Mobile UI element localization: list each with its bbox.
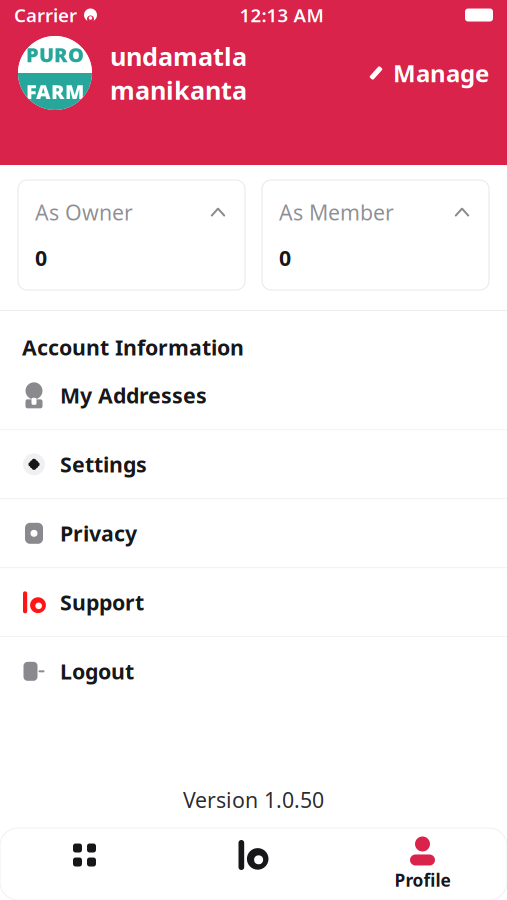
staticText: undamatla manikanta [110,39,247,107]
staticText: FARM [26,78,84,105]
button[interactable]: As Member [262,180,489,290]
staticText: Profile [394,868,450,891]
staticText: Settings [60,450,147,478]
staticText: As Member [279,198,394,226]
staticText: 0 [279,244,291,272]
button[interactable]: Home [0,828,169,900]
staticText: Manage [393,57,489,89]
staticText: Version 1.0.50 [183,786,324,814]
button[interactable]: Feed [169,828,338,900]
staticText: Support [60,588,144,616]
staticText: My Addresses [60,381,207,409]
button[interactable]: As Owner [18,180,245,290]
staticText: Privacy [60,519,137,547]
button[interactable]: Settings [0,430,507,498]
button[interactable]: My Addresses [0,361,507,429]
staticText: As Owner [35,198,133,226]
staticText: Carrier [14,3,77,27]
staticText: Logout [60,657,134,685]
staticText: Account Information [22,333,244,361]
staticText: 12:13 AM [239,3,323,27]
button[interactable]: Manage [367,49,489,97]
staticText: PURO [26,41,84,68]
button[interactable]: Profile [338,828,507,900]
button[interactable]: Privacy [0,499,507,567]
button[interactable]: Support [0,568,507,636]
staticText: 0 [35,244,47,272]
button[interactable]: Logout [0,637,507,705]
